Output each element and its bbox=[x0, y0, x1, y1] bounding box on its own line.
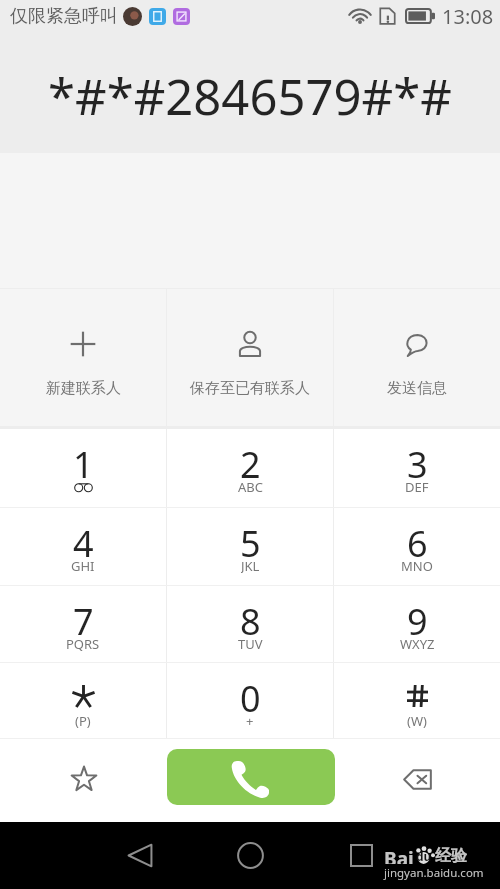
staticText: 5 bbox=[240, 519, 261, 563]
staticText: 仅限紧急呼叫 bbox=[10, 5, 118, 28]
staticText: *#*#2846579#*# bbox=[48, 63, 452, 130]
staticText: (P) bbox=[75, 712, 91, 728]
button[interactable]: 2 bbox=[167, 429, 333, 507]
staticText: (W) bbox=[407, 712, 427, 728]
staticText: 3 bbox=[407, 440, 428, 484]
staticText: JKL bbox=[241, 557, 260, 573]
staticText: du bbox=[416, 848, 432, 864]
button[interactable]: 5 bbox=[167, 507, 333, 585]
button[interactable]: Call bbox=[167, 749, 335, 805]
staticText: 发送信息 bbox=[387, 379, 447, 398]
staticText: MNO bbox=[401, 557, 433, 573]
staticText: WXYZ bbox=[400, 635, 435, 651]
staticText: Bai bbox=[384, 846, 414, 864]
staticText: 13:08 bbox=[442, 3, 494, 30]
staticText: TUV bbox=[238, 635, 263, 651]
staticText: 0 bbox=[240, 674, 261, 718]
staticText: + bbox=[246, 712, 254, 728]
button[interactable]: 保存至已有联系人 bbox=[167, 289, 333, 426]
button[interactable]: 3 bbox=[334, 429, 500, 507]
button[interactable]: 8 bbox=[167, 585, 333, 662]
staticText: 保存至已有联系人 bbox=[190, 379, 310, 398]
staticText: 1 bbox=[73, 440, 94, 484]
button[interactable]: Favorites bbox=[0, 738, 167, 822]
staticText: ABC bbox=[238, 478, 263, 494]
staticText: 4 bbox=[73, 519, 94, 563]
staticText: 8 bbox=[240, 597, 261, 641]
button[interactable]: 发送信息 bbox=[334, 289, 500, 426]
button[interactable]: 0 bbox=[167, 662, 333, 738]
staticText: 新建联系人 bbox=[46, 379, 121, 398]
staticText: 2 bbox=[240, 440, 261, 484]
button[interactable]: 4 bbox=[0, 507, 166, 585]
staticText: GHI bbox=[71, 557, 95, 573]
staticText: 7 bbox=[73, 597, 94, 641]
staticText: 经验 bbox=[435, 846, 467, 864]
button[interactable]: 1 bbox=[0, 429, 166, 507]
button[interactable]: Home bbox=[209, 822, 292, 889]
staticText: PQRS bbox=[66, 635, 100, 651]
staticText: 9 bbox=[407, 597, 428, 641]
button[interactable]: 9 bbox=[334, 585, 500, 662]
button[interactable]: Recents bbox=[331, 822, 391, 889]
button[interactable]: (W) bbox=[334, 662, 500, 738]
button[interactable]: 新建联系人 bbox=[0, 289, 166, 426]
button[interactable]: Backspace bbox=[335, 738, 500, 822]
staticText: DEF bbox=[405, 478, 429, 494]
button[interactable]: (P) bbox=[0, 662, 166, 738]
staticText: 6 bbox=[407, 519, 428, 563]
staticText: jingyan.baidu.com bbox=[384, 865, 484, 881]
button[interactable]: 6 bbox=[334, 507, 500, 585]
button[interactable]: 7 bbox=[0, 585, 166, 662]
button[interactable]: Back bbox=[98, 822, 181, 889]
